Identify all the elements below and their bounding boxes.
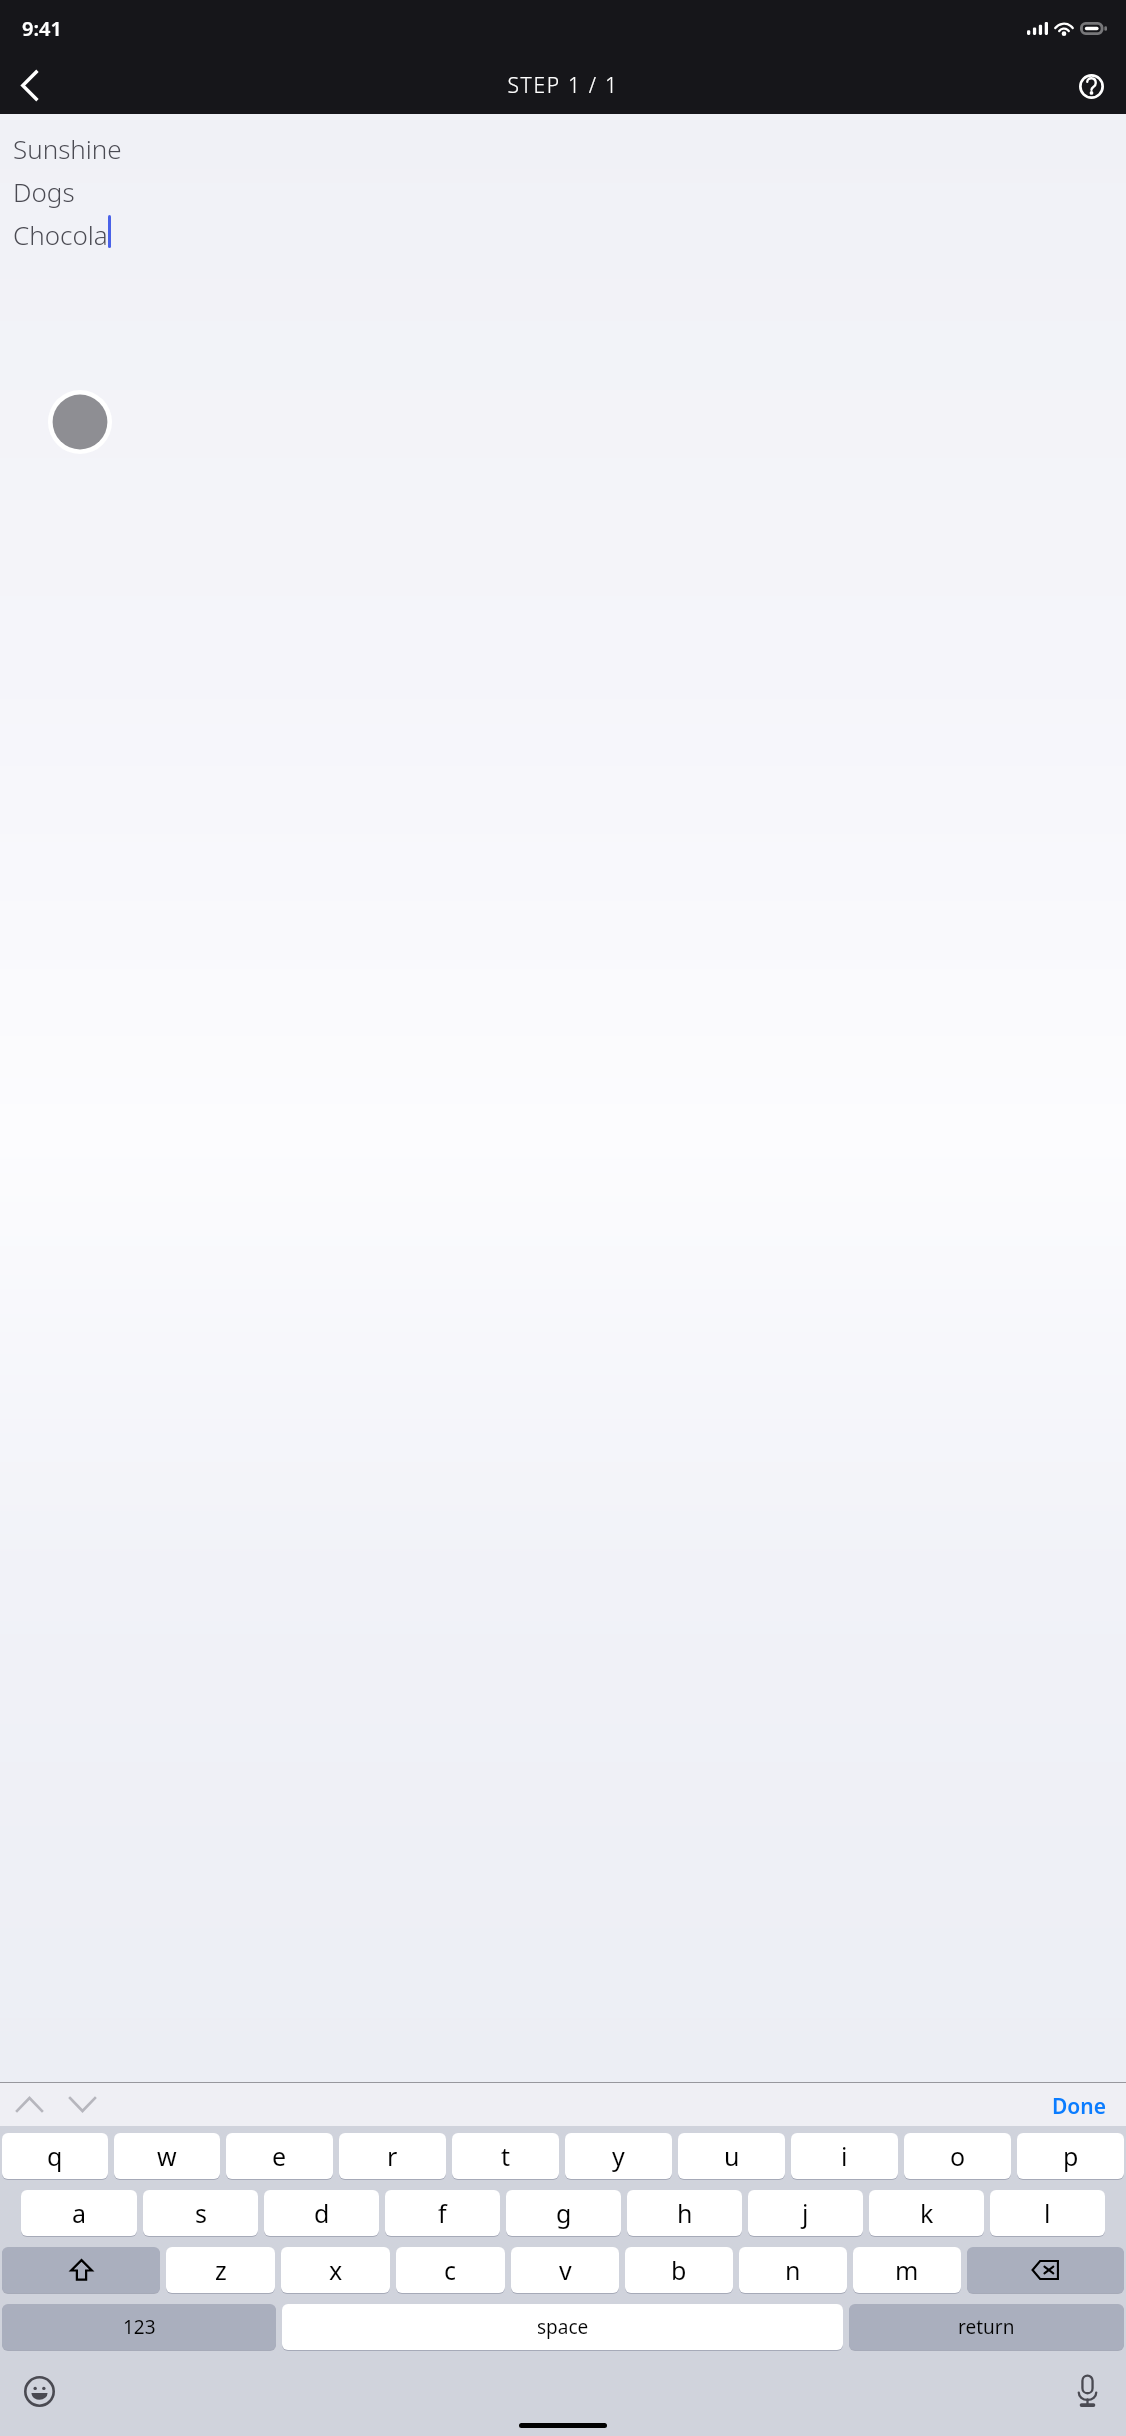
button[interactable]: w (114, 2133, 220, 2179)
staticText: x (329, 2253, 343, 2287)
staticText: p (1063, 2139, 1079, 2173)
button[interactable]: space (282, 2304, 843, 2350)
button[interactable] (967, 2247, 1124, 2293)
staticText: Done (1052, 2092, 1107, 2117)
button[interactable]: h (627, 2190, 742, 2236)
staticText: y (612, 2139, 625, 2173)
button[interactable]: d (264, 2190, 379, 2236)
staticText: a (72, 2196, 87, 2230)
button[interactable]: x (281, 2247, 390, 2293)
other: Delete (967, 2247, 1124, 2294)
staticText: l (1044, 2196, 1051, 2230)
staticText: w (157, 2139, 177, 2173)
staticText: r (387, 2139, 398, 2173)
button[interactable]: k (869, 2190, 984, 2236)
button[interactable]: e (226, 2133, 333, 2179)
staticText: o (950, 2139, 966, 2173)
button[interactable]: f (385, 2190, 500, 2236)
button[interactable]: v (511, 2247, 619, 2293)
button[interactable]: return (849, 2304, 1124, 2350)
staticText: b (671, 2253, 687, 2287)
staticText: Dogs (13, 174, 75, 209)
staticText: e (272, 2139, 287, 2173)
button[interactable]: l (990, 2190, 1105, 2236)
button[interactable]: Done (1033, 2083, 1126, 2126)
staticText: return (958, 2314, 1015, 2340)
button[interactable]: Previous field (8, 2083, 51, 2126)
button[interactable]: Back (0, 57, 58, 114)
button[interactable]: 123 (2, 2304, 276, 2350)
staticText: STEP 1 / 1 (507, 71, 619, 100)
button[interactable]: u (678, 2133, 785, 2179)
button[interactable]: m (853, 2247, 961, 2293)
staticText: u (724, 2139, 740, 2173)
button[interactable]: n (739, 2247, 847, 2293)
other: Shift (2, 2247, 160, 2294)
staticText: d (314, 2196, 330, 2230)
staticText: v (559, 2253, 572, 2287)
button[interactable]: Emoji (12, 2364, 66, 2418)
staticText: t (501, 2139, 511, 2173)
staticText: Chocola (13, 217, 108, 252)
staticText: i (841, 2139, 848, 2173)
button[interactable]: p (1017, 2133, 1124, 2179)
staticText: space (537, 2314, 589, 2340)
button[interactable]: r (339, 2133, 446, 2179)
staticText: n (785, 2253, 801, 2287)
button[interactable]: b (625, 2247, 733, 2293)
button[interactable]: y (565, 2133, 672, 2179)
button[interactable]: a (21, 2190, 137, 2236)
button[interactable]: t (452, 2133, 559, 2179)
button[interactable] (2, 2247, 160, 2293)
button[interactable]: Selection handle (47, 389, 113, 455)
button[interactable]: q (2, 2133, 108, 2179)
button[interactable]: g (506, 2190, 621, 2236)
staticText: k (920, 2196, 934, 2230)
staticText: Sunshine (13, 131, 122, 166)
staticText: c (444, 2253, 457, 2287)
staticText: g (556, 2196, 572, 2230)
staticText: 9:41 (22, 15, 62, 42)
button[interactable]: z (166, 2247, 275, 2293)
staticText: h (677, 2196, 693, 2230)
staticText: 123 (123, 2314, 156, 2340)
button[interactable]: Dictate (1060, 2364, 1114, 2418)
button[interactable]: s (143, 2190, 258, 2236)
button[interactable]: c (396, 2247, 505, 2293)
button[interactable]: j (748, 2190, 863, 2236)
staticText: q (47, 2139, 63, 2173)
staticText: j (802, 2196, 809, 2230)
staticText: m (895, 2253, 919, 2287)
staticText: z (215, 2253, 227, 2287)
staticText: f (438, 2196, 447, 2230)
button[interactable]: Next field (61, 2083, 104, 2126)
button[interactable]: o (904, 2133, 1011, 2179)
staticText: s (195, 2196, 207, 2230)
button[interactable]: Help (1063, 58, 1119, 114)
button[interactable]: i (791, 2133, 898, 2179)
